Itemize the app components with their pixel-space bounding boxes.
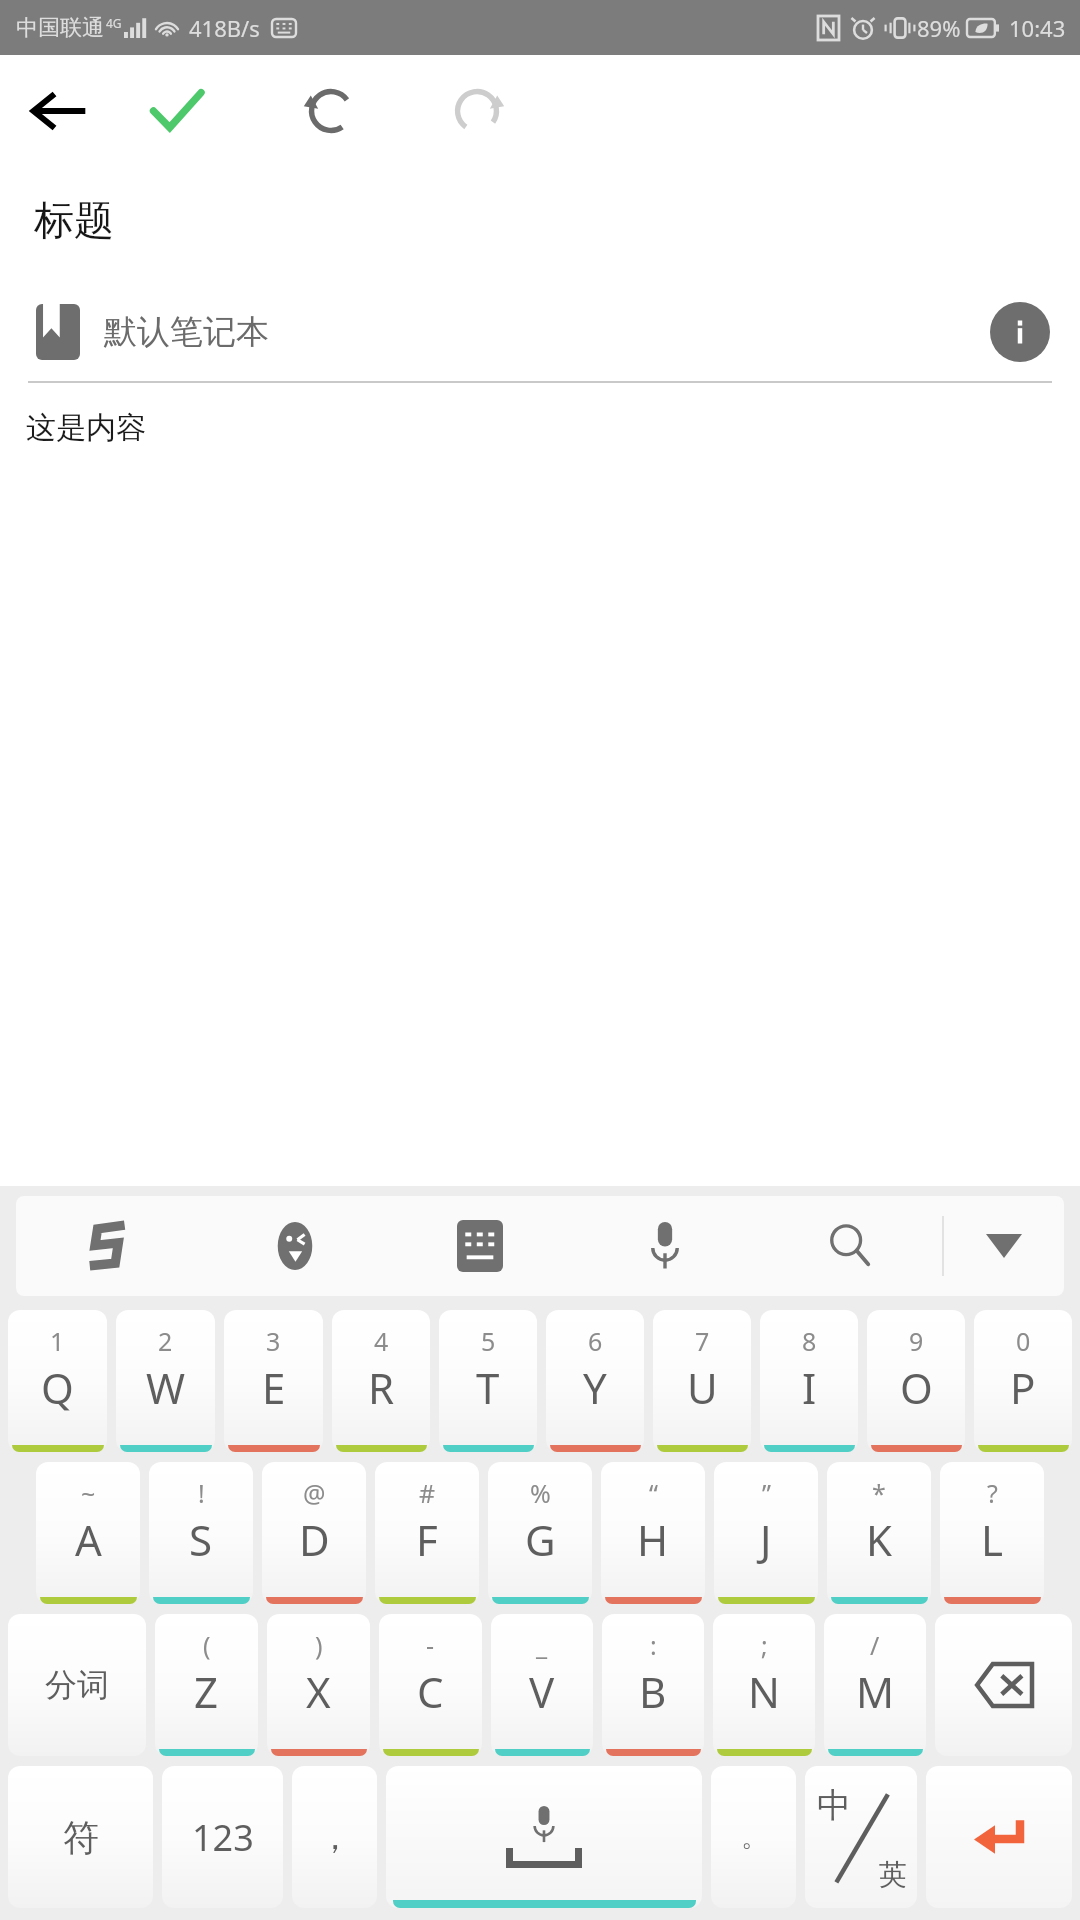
staticText: V: [529, 1663, 555, 1720]
staticText: A: [75, 1511, 102, 1568]
button[interactable]: 。: [711, 1766, 796, 1908]
button[interactable]: Voice input: [572, 1196, 757, 1296]
button[interactable]: Redo: [418, 55, 536, 167]
staticText: Y: [583, 1359, 607, 1416]
button[interactable]: 9: [867, 1310, 965, 1452]
staticText: ): [315, 1628, 323, 1662]
button[interactable]: Space or voice input: [386, 1766, 702, 1908]
button[interactable]: Emoji: [202, 1196, 387, 1296]
button[interactable]: _: [491, 1614, 593, 1756]
staticText: ;: [761, 1628, 768, 1662]
staticText: 英: [879, 1857, 907, 1892]
button[interactable]: 123: [162, 1766, 283, 1908]
button[interactable]: 分词: [8, 1614, 146, 1756]
staticText: L: [981, 1511, 1004, 1568]
staticText: /: [870, 1628, 880, 1662]
button[interactable]: Sogou input: [16, 1196, 202, 1296]
staticText: R: [368, 1359, 395, 1416]
staticText: :: [650, 1628, 657, 1662]
staticText: G: [525, 1511, 556, 1568]
staticText: *: [872, 1476, 886, 1510]
button[interactable]: 标题: [34, 195, 114, 245]
staticText: 2: [158, 1324, 173, 1358]
staticText: J: [760, 1511, 772, 1568]
button[interactable]: ;: [713, 1614, 815, 1756]
button[interactable]: @: [262, 1462, 366, 1604]
button[interactable]: 5: [439, 1310, 537, 1452]
button[interactable]: ~: [36, 1462, 140, 1604]
staticText: F: [416, 1511, 438, 1568]
button[interactable]: 默认笔记本: [0, 289, 1080, 375]
button[interactable]: ?: [940, 1462, 1044, 1604]
other: Backspace: [976, 1664, 1032, 1706]
staticText: ”: [762, 1476, 771, 1510]
staticText: U: [687, 1359, 718, 1416]
button[interactable]: #: [375, 1462, 479, 1604]
staticText: 6: [588, 1324, 603, 1358]
staticText: 123: [192, 1813, 254, 1862]
button[interactable]: 4: [332, 1310, 430, 1452]
button[interactable]: 7: [653, 1310, 751, 1452]
staticText: 0: [1016, 1324, 1031, 1358]
staticText: #: [419, 1476, 436, 1510]
button[interactable]: !: [149, 1462, 253, 1604]
button[interactable]: Undo: [272, 55, 390, 167]
staticText: K: [866, 1511, 892, 1568]
staticText: _: [536, 1628, 548, 1662]
staticText: (: [203, 1628, 211, 1662]
button[interactable]: %: [488, 1462, 592, 1604]
button[interactable]: (: [155, 1614, 258, 1756]
button[interactable]: Save: [118, 55, 236, 167]
button[interactable]: 6: [546, 1310, 644, 1452]
staticText: ~: [81, 1476, 96, 1510]
staticText: 8: [802, 1324, 817, 1358]
staticText: T: [476, 1359, 500, 1416]
staticText: E: [262, 1359, 286, 1416]
staticText: “: [649, 1476, 658, 1510]
button[interactable]: *: [827, 1462, 931, 1604]
staticText: D: [299, 1511, 330, 1568]
button[interactable]: Enter: [926, 1766, 1072, 1908]
button[interactable]: Backspace: [935, 1614, 1072, 1756]
button[interactable]: -: [379, 1614, 482, 1756]
staticText: 。: [741, 1821, 767, 1854]
staticText: 中国联通: [16, 14, 104, 42]
button[interactable]: Keyboard layout: [387, 1196, 572, 1296]
staticText: @: [303, 1476, 326, 1510]
button[interactable]: ，: [292, 1766, 377, 1908]
staticText: !: [198, 1476, 205, 1510]
staticText: 符: [63, 1815, 99, 1860]
staticText: 4G: [106, 15, 122, 31]
button[interactable]: Info: [990, 302, 1050, 362]
staticText: 9: [909, 1324, 924, 1358]
button[interactable]: 符: [8, 1766, 153, 1908]
staticText: 89%: [917, 13, 961, 43]
staticText: I: [802, 1359, 817, 1416]
staticText: Z: [194, 1663, 219, 1720]
button[interactable]: Hide keyboard: [944, 1196, 1064, 1296]
button[interactable]: ”: [714, 1462, 818, 1604]
button[interactable]: “: [601, 1462, 705, 1604]
button[interactable]: 3: [224, 1310, 323, 1452]
staticText: 7: [695, 1324, 710, 1358]
staticText: 1: [50, 1324, 65, 1358]
staticText: 10:43: [1009, 13, 1066, 43]
staticText: 5: [481, 1324, 496, 1358]
button[interactable]: 8: [760, 1310, 858, 1452]
staticText: 418B/s: [189, 13, 260, 43]
button[interactable]: Search: [757, 1196, 942, 1296]
staticText: P: [1010, 1359, 1036, 1416]
staticText: 中: [817, 1784, 851, 1827]
staticText: -: [426, 1628, 435, 1662]
button[interactable]: 0: [974, 1310, 1072, 1452]
button[interactable]: /: [824, 1614, 926, 1756]
button[interactable]: Back: [0, 55, 118, 167]
button[interactable]: ): [267, 1614, 370, 1756]
button[interactable]: 2: [116, 1310, 215, 1452]
staticText: 默认笔记本: [104, 311, 269, 353]
button[interactable]: 1: [8, 1310, 107, 1452]
staticText: H: [637, 1511, 669, 1568]
button[interactable]: :: [602, 1614, 704, 1756]
staticText: Q: [41, 1359, 74, 1416]
button[interactable]: Chinese English toggle: [805, 1766, 917, 1908]
